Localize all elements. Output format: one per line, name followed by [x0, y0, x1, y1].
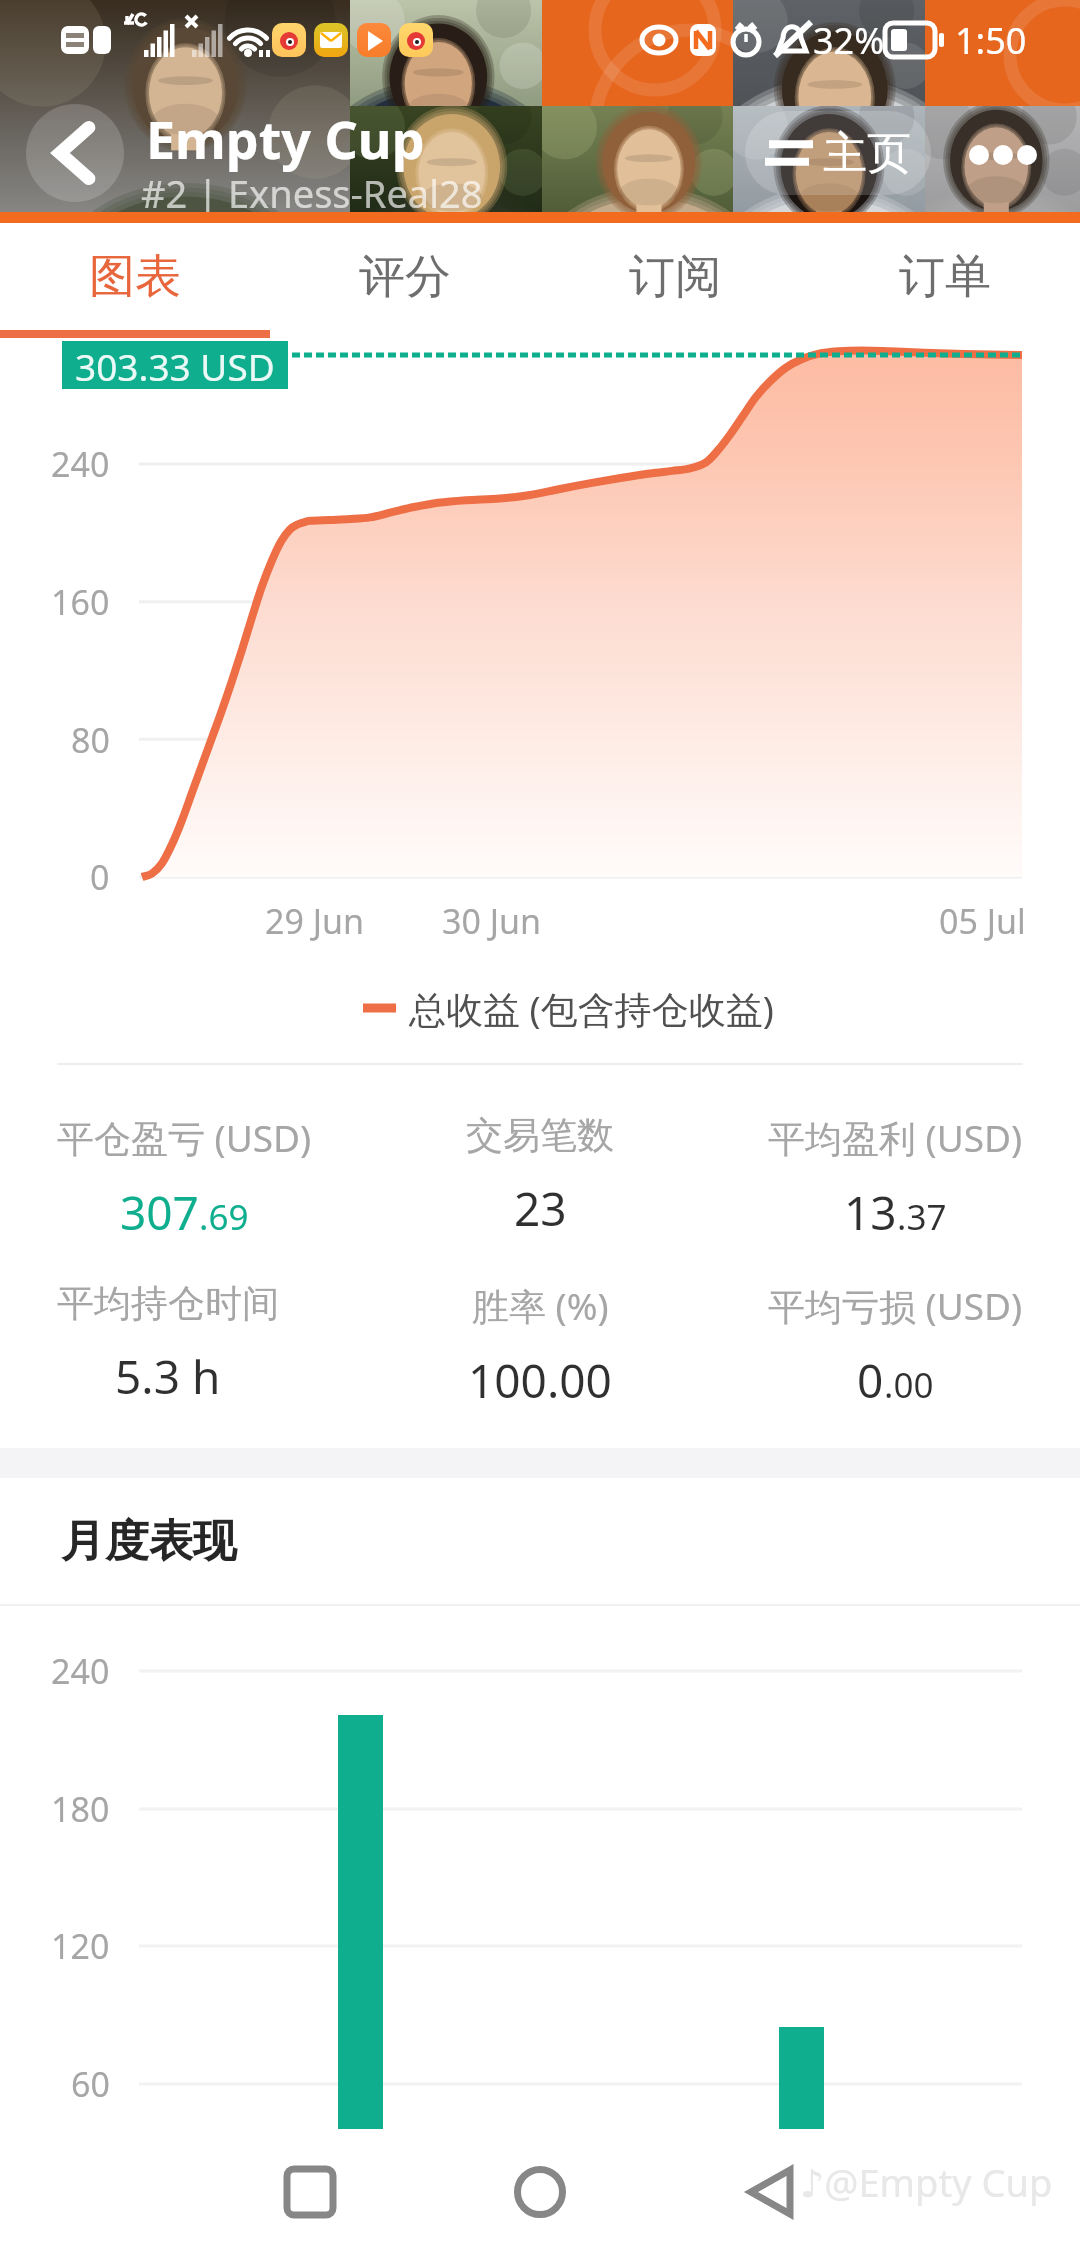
button[interactable]: 主页: [745, 111, 931, 195]
staticText: 订阅: [629, 248, 721, 306]
staticText: .69: [199, 1193, 249, 1241]
button[interactable]: 订单: [810, 223, 1080, 330]
staticText: 100.00: [468, 1349, 612, 1412]
staticText: 120: [51, 1923, 110, 1969]
staticText: 评分: [359, 248, 451, 306]
button[interactable]: Home: [470, 2140, 610, 2244]
staticText: 总收益 (包含持仓收益): [409, 983, 774, 1034]
staticText: 平仓盈亏 (USD): [57, 1112, 312, 1163]
staticText: 订单: [899, 248, 991, 306]
staticText: 月度表现: [61, 1514, 237, 1569]
staticText: 303.33 USD: [75, 341, 275, 389]
staticText: 5.3 h: [115, 1345, 221, 1408]
button[interactable]: Recent apps: [240, 2140, 380, 2244]
staticText: 0: [90, 854, 110, 900]
staticText: 240: [51, 441, 110, 487]
staticText: 32%: [813, 16, 885, 65]
staticText: 胜率 (%): [472, 1280, 609, 1331]
staticText: 30 Jun: [442, 898, 542, 944]
button[interactable]: 评分: [270, 223, 540, 330]
button[interactable]: Back: [700, 2140, 840, 2244]
staticText: .37: [897, 1193, 947, 1241]
staticText: 图表: [89, 248, 181, 306]
staticText: 23: [514, 1177, 567, 1240]
staticText: 平均盈利 (USD): [768, 1112, 1023, 1163]
staticText: 240: [51, 1648, 110, 1694]
staticText: 180: [51, 1786, 110, 1832]
staticText: 13: [844, 1181, 897, 1244]
button[interactable]: 订阅: [540, 223, 810, 330]
button[interactable]: 图表: [0, 223, 270, 330]
staticText: 平均亏损 (USD): [768, 1280, 1023, 1331]
staticText: 80: [71, 717, 110, 763]
staticText: 0: [857, 1349, 884, 1412]
staticText: 307: [120, 1181, 199, 1244]
staticText: 60: [71, 2061, 110, 2107]
staticText: 05 Jul: [939, 898, 1026, 944]
staticText: Empty Cup: [146, 103, 425, 174]
staticText: ♪@Empty Cup: [800, 2156, 1053, 2208]
staticText: 平均持仓时间: [57, 1280, 279, 1327]
staticText: .00: [884, 1361, 934, 1409]
staticText: 160: [51, 579, 110, 625]
button[interactable]: More options: [955, 107, 1051, 203]
staticText: 交易笔数: [466, 1112, 614, 1159]
button[interactable]: Back: [26, 104, 124, 202]
staticText: 1:50: [955, 16, 1027, 65]
staticText: 主页: [823, 126, 911, 181]
staticText: #2 | Exness-Real28: [141, 167, 483, 219]
staticText: 29 Jun: [265, 898, 365, 944]
